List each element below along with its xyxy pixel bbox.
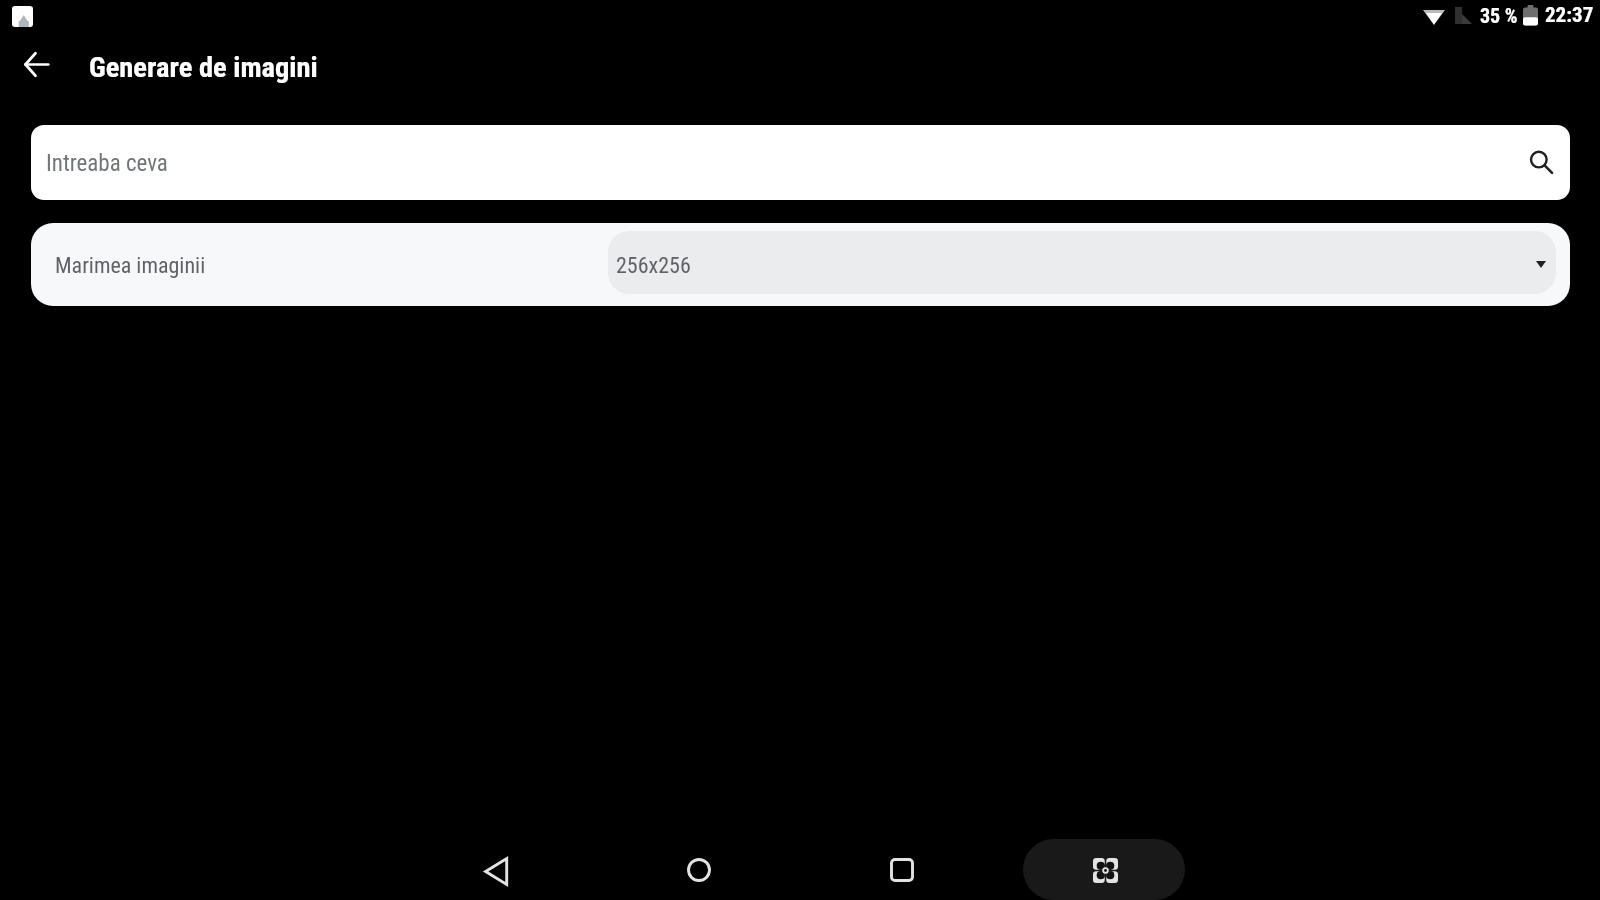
- button[interactable]: 256x256: [608, 231, 1556, 294]
- button[interactable]: Back: [12, 40, 60, 88]
- staticText: 256x256: [616, 253, 691, 279]
- button[interactable]: Home: [669, 840, 729, 900]
- staticText: Generare de imagini: [89, 51, 318, 84]
- staticText: Marimea imaginii: [55, 253, 206, 279]
- staticText: Intreaba ceva: [46, 150, 168, 177]
- staticText: 22:37: [1545, 3, 1594, 28]
- button[interactable]: Switch input method: [1023, 839, 1185, 900]
- button[interactable]: Intreaba ceva: [31, 125, 1570, 200]
- button[interactable]: Recent apps: [872, 840, 932, 900]
- staticText: 35 %: [1480, 4, 1518, 27]
- button[interactable]: Back: [466, 841, 526, 900]
